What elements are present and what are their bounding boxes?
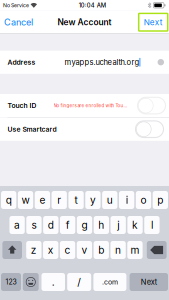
staticText: x: [48, 244, 54, 256]
staticText: Use Smartcard: [7, 125, 56, 133]
staticText: .com: [102, 278, 118, 286]
button[interactable]: c: [60, 241, 75, 259]
button[interactable]: d: [43, 216, 58, 234]
staticText: i: [126, 194, 128, 206]
button[interactable]: Next: [139, 13, 168, 31]
staticText: No Service: [3, 2, 29, 8]
button[interactable]: a: [9, 216, 25, 234]
button[interactable]: Cancel: [0, 14, 37, 31]
button[interactable]: s: [26, 216, 42, 234]
button[interactable]: n: [110, 241, 126, 259]
staticText: b: [98, 244, 104, 256]
button[interactable]: q: [1, 191, 16, 209]
staticText: /: [77, 276, 81, 288]
button[interactable]: p: [153, 191, 168, 209]
button[interactable]: .: [41, 273, 65, 291]
staticText: t: [75, 194, 78, 206]
button[interactable]: i: [119, 191, 134, 209]
staticText: d: [48, 219, 54, 231]
staticText: e: [39, 194, 45, 206]
button[interactable]: z: [26, 241, 41, 259]
button[interactable]: .com: [93, 273, 126, 291]
staticText: 123: [5, 278, 16, 286]
staticText: p: [157, 194, 163, 206]
staticText: k: [132, 219, 138, 231]
button[interactable]: Next: [130, 273, 168, 291]
button[interactable]: Delete: [147, 241, 167, 259]
button[interactable]: x: [43, 241, 58, 259]
button[interactable]: Use Smartcard: [0, 118, 169, 141]
staticText: w: [21, 194, 29, 206]
button[interactable]: r: [52, 191, 67, 209]
button[interactable]: o: [136, 191, 151, 209]
button[interactable]: /: [67, 273, 91, 291]
staticText: n: [115, 244, 121, 256]
staticText: q: [6, 194, 12, 206]
staticText: g: [81, 219, 87, 231]
staticText: f: [66, 219, 70, 231]
staticText: o: [140, 194, 146, 206]
button[interactable]: 123: [1, 273, 21, 291]
button[interactable]: Touch ID: [0, 94, 169, 117]
staticText: s: [31, 219, 36, 231]
button[interactable]: g: [77, 216, 92, 234]
staticText: Next: [141, 277, 157, 286]
staticText: v: [81, 244, 87, 256]
button[interactable]: l: [144, 216, 159, 234]
staticText: c: [65, 244, 71, 256]
staticText: h: [98, 219, 104, 231]
button[interactable]: v: [77, 241, 92, 259]
button[interactable]: j: [110, 216, 126, 234]
staticText: Address: [7, 58, 35, 66]
staticText: r: [57, 194, 61, 206]
staticText: a: [14, 219, 20, 231]
staticText: l: [151, 219, 153, 231]
staticText: New Account: [57, 17, 111, 27]
button[interactable]: t: [68, 191, 84, 209]
button[interactable]: e: [35, 191, 50, 209]
button[interactable]: f: [60, 216, 75, 234]
staticText: .: [52, 276, 55, 288]
staticText: z: [31, 244, 37, 256]
button[interactable]: w: [18, 191, 33, 209]
button[interactable]: h: [94, 216, 109, 234]
button[interactable]: Address: [0, 51, 169, 74]
button[interactable]: Emoji keyboard: [23, 273, 39, 291]
button[interactable]: y: [85, 191, 101, 209]
button[interactable]: Shift: [2, 241, 22, 259]
staticText: m: [130, 244, 139, 256]
staticText: u: [107, 194, 113, 206]
staticText: j: [117, 219, 119, 231]
staticText: myapps.uchealth.org: [64, 58, 139, 67]
staticText: Next: [144, 17, 163, 27]
staticText: Cancel: [4, 17, 33, 28]
staticText: 10:04 AM: [79, 2, 106, 9]
staticText: y: [90, 194, 96, 206]
button[interactable]: u: [102, 191, 117, 209]
staticText: No fingers are enrolled with Touch ID: [53, 103, 129, 108]
button[interactable]: m: [127, 241, 143, 259]
button[interactable]: b: [94, 241, 109, 259]
button[interactable]: k: [127, 216, 143, 234]
staticText: Touch ID: [7, 101, 36, 110]
